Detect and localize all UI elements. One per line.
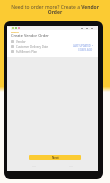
button[interactable]: Vendor <box>11 39 94 44</box>
staticText: Need to order more? Create a Vendor Orde… <box>10 4 100 16</box>
button[interactable]: Fulfillment Plan <box>11 49 94 54</box>
staticText: Create Vendor Order <box>11 33 49 38</box>
staticText: 3 DAYS AGO <box>78 48 93 51</box>
button[interactable]: Next <box>29 155 81 160</box>
staticText: Vendor <box>16 40 26 44</box>
staticText: Customer Delivery Date <box>16 45 49 49</box>
staticText: LAST UPDATED • <box>73 44 93 47</box>
staticText: Next <box>52 156 59 160</box>
staticText: ORDERS <box>11 31 19 33</box>
staticText: Fulfillment Plan <box>16 50 38 54</box>
button[interactable]: Customer Delivery Date <box>11 44 94 49</box>
